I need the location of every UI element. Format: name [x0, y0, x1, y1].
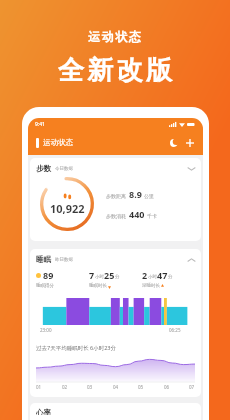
staticText: 小时: [95, 274, 104, 280]
staticText: 步数: [36, 164, 51, 173]
button[interactable]: 睡眠: [30, 249, 201, 397]
staticText: 步数距离: [106, 193, 126, 199]
staticText: 公里: [144, 193, 154, 199]
staticText: 睡眠: [36, 255, 51, 264]
staticText: 8.9: [129, 188, 142, 200]
staticText: 深睡时长: [142, 283, 160, 289]
staticText: 23:00: [40, 327, 52, 333]
staticText: 89: [43, 269, 54, 281]
staticText: 05: [138, 384, 144, 390]
staticText: 47: [157, 269, 168, 281]
staticText: 04: [113, 384, 119, 390]
staticText: 今日数据: [55, 166, 73, 172]
button[interactable]: Night mode: [168, 137, 179, 148]
staticText: 10,922: [50, 201, 85, 216]
staticText: 06: [164, 384, 170, 390]
button[interactable]: 步数: [30, 158, 201, 241]
staticText: 2: [142, 269, 148, 281]
button[interactable]: Add: [184, 137, 195, 148]
staticText: 9:41: [35, 121, 45, 128]
staticText: 全新改版: [56, 54, 174, 87]
staticText: 睡眠时长: [89, 283, 107, 289]
staticText: 25: [104, 269, 115, 281]
staticText: 步数消耗: [106, 213, 126, 219]
staticText: 过去7天平均睡眠时长 6小时23分: [36, 344, 117, 352]
staticText: 07: [189, 384, 195, 390]
staticText: 440: [129, 208, 145, 220]
staticText: 02: [62, 384, 68, 390]
staticText: 小时: [148, 274, 157, 280]
staticText: 06:25: [169, 327, 181, 333]
staticText: 睡眠得分: [36, 283, 54, 289]
staticText: 运动状态: [43, 138, 73, 147]
staticText: 千卡: [147, 213, 157, 219]
staticText: 心率: [36, 408, 51, 415]
staticText: 运动状态: [88, 29, 143, 44]
staticText: 03: [87, 384, 93, 390]
staticText: 分: [168, 274, 173, 280]
staticText: 7: [89, 269, 95, 281]
staticText: 01: [36, 384, 42, 390]
staticText: 昨日数据: [55, 257, 73, 263]
staticText: 分: [115, 274, 120, 280]
